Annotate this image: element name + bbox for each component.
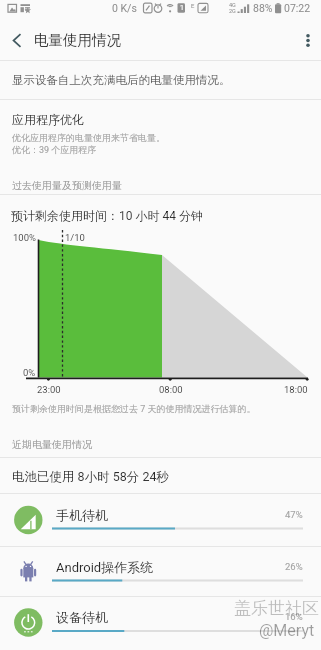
staticText: 优化应用程序的电量使用来节省电量。 (12, 132, 165, 143)
staticText: 手机待机 (56, 507, 108, 523)
staticText: 0% (23, 367, 36, 378)
staticText: 1 (180, 4, 184, 12)
staticText: 1/10 (65, 232, 85, 243)
button[interactable]: 设备待机 (0, 597, 321, 648)
staticText: 16% (285, 611, 303, 622)
staticText: E (191, 2, 195, 9)
button[interactable]: Back (0, 23, 34, 57)
staticText: 预计剩余使用时间是根据您过去 7 天的使用情况进行估算的。 (12, 403, 256, 414)
staticText: 07:22 (284, 2, 311, 14)
staticText: 26% (285, 561, 303, 572)
staticText: 18:00 (284, 384, 308, 395)
staticText: 预计剩余使用时间：10 小时 44 分钟 (11, 208, 203, 223)
staticText: 电池已使用 8小时 58分 24秒 (12, 469, 169, 485)
staticText: 2G (229, 8, 236, 14)
staticText: 0 K/s (112, 2, 137, 14)
button[interactable] (0, 458, 321, 493)
staticText: 100% (13, 232, 36, 243)
button[interactable]: Android操作系统 (0, 547, 321, 597)
staticText: 47% (285, 509, 303, 520)
staticText: 88% (253, 2, 273, 14)
staticText: 过去使用量及预测使用量 (12, 179, 122, 192)
button[interactable]: 手机待机 (0, 494, 321, 546)
staticText: 电量使用情况 (34, 31, 121, 49)
staticText: 显示设备自上次充满电后的电量使用情况。 (12, 73, 231, 87)
staticText: @Meryt (259, 621, 315, 640)
staticText: 23:00 (37, 384, 61, 395)
button[interactable]: More options (285, 22, 321, 58)
staticText: Android操作系统 (56, 559, 154, 575)
staticText: 08:00 (159, 384, 183, 395)
staticText: 4G (229, 2, 236, 8)
button[interactable] (0, 100, 321, 174)
staticText: 应用程序优化 (12, 112, 84, 127)
staticText: 盖乐世社区 (234, 598, 319, 619)
staticText: 近期电量使用情况 (12, 438, 92, 451)
staticText: 优化：39 个应用程序 (12, 144, 97, 155)
staticText: 设备待机 (56, 609, 108, 625)
